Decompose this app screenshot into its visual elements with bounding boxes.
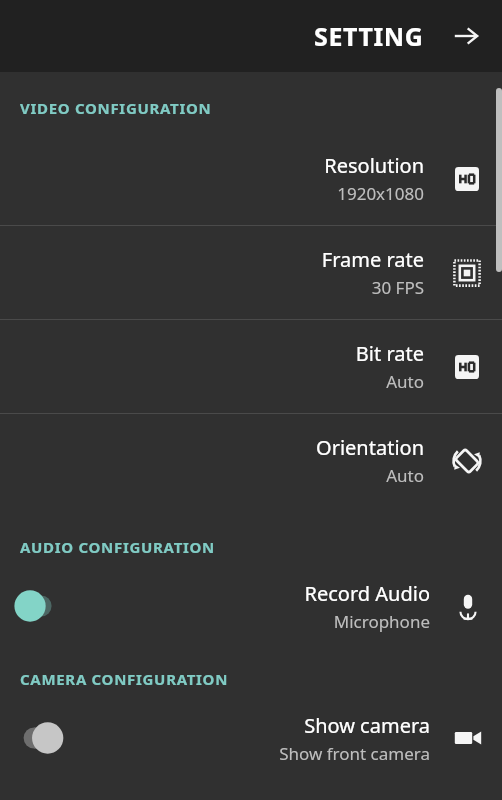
staticText: Resolution bbox=[324, 152, 424, 179]
staticText: 30 FPS bbox=[371, 276, 424, 299]
button[interactable]: Toggle show camera bbox=[18, 721, 74, 755]
staticText: Show camera bbox=[304, 712, 430, 739]
staticText: Record Audio bbox=[304, 580, 430, 607]
button[interactable]: Resolution bbox=[0, 132, 502, 225]
staticText: Frame rate bbox=[321, 246, 424, 273]
button[interactable]: Toggle record audio bbox=[0, 567, 502, 645]
button[interactable]: Toggle record audio bbox=[18, 589, 74, 623]
staticText: Orientation bbox=[316, 434, 424, 461]
button[interactable]: Bit rate bbox=[0, 320, 502, 413]
staticText: VIDEO CONFIGURATION bbox=[20, 98, 212, 118]
button[interactable]: Orientation bbox=[0, 414, 502, 507]
staticText: CAMERA CONFIGURATION bbox=[20, 669, 229, 689]
staticText: Auto bbox=[386, 464, 424, 487]
button[interactable]: Next bbox=[444, 14, 488, 58]
staticText: Show front camera bbox=[279, 742, 430, 765]
staticText: SETTING bbox=[314, 19, 424, 53]
staticText: Microphone bbox=[333, 610, 430, 633]
staticText: 1920x1080 bbox=[337, 182, 424, 205]
button[interactable]: Toggle show camera bbox=[0, 699, 502, 777]
staticText: Auto bbox=[386, 370, 424, 393]
staticText: Bit rate bbox=[355, 340, 424, 367]
staticText: AUDIO CONFIGURATION bbox=[20, 537, 215, 557]
button[interactable]: Frame rate bbox=[0, 226, 502, 319]
button[interactable]: SETTING bbox=[310, 13, 428, 59]
